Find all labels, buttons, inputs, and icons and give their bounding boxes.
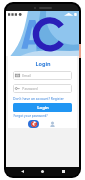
button[interactable]: Home [38,167,47,176]
staticText: Email [22,73,31,78]
button[interactable]: Email [13,71,72,80]
staticText: Password [22,86,38,91]
button[interactable]: Forgot your password? [13,114,72,118]
button[interactable]: Sign in with Google [28,120,39,128]
staticText: Login [35,60,51,67]
button[interactable]: Don't have an account? Register [13,96,72,101]
staticText: Login [37,105,49,111]
staticText: Don't have an account? Register [13,96,64,101]
button[interactable]: Recents [59,167,68,176]
button[interactable]: Back [18,167,27,176]
button[interactable]: Login [13,103,72,112]
button[interactable]: Continue as guest [47,120,58,128]
button[interactable]: Password [13,84,72,93]
staticText: Forgot your password? [13,114,48,118]
